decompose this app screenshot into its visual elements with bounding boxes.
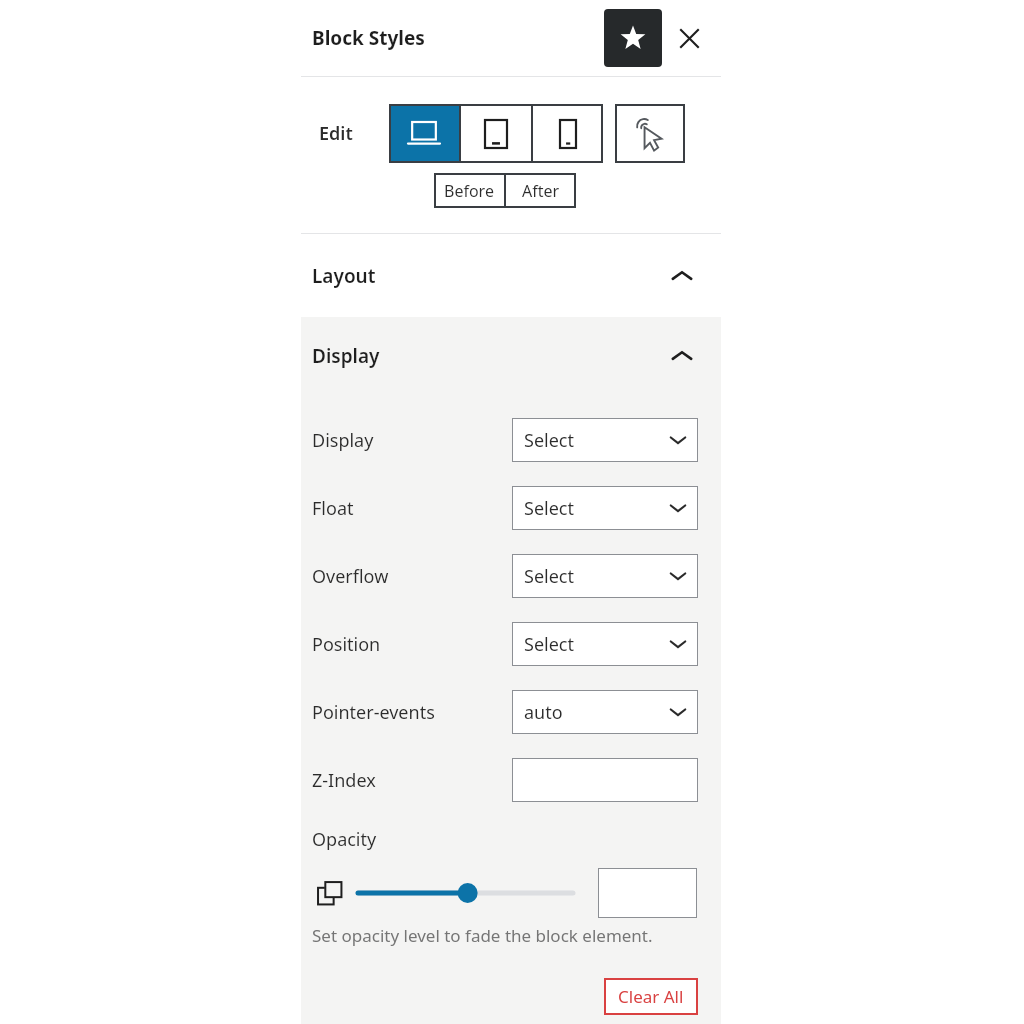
button[interactable]: Select	[512, 554, 698, 598]
staticText: Display	[312, 343, 380, 369]
staticText: Select	[524, 564, 670, 589]
button[interactable]: Select	[512, 418, 698, 462]
staticText: Select	[524, 632, 670, 657]
button[interactable]: Favorite	[604, 9, 662, 67]
button[interactable]: Close	[671, 20, 707, 56]
button[interactable]: Select	[512, 622, 698, 666]
staticText: Opacity	[312, 827, 377, 852]
button[interactable]: Display	[301, 317, 721, 395]
staticText: Block Styles	[312, 25, 425, 51]
staticText: Overflow	[312, 564, 389, 589]
staticText: Pointer-events	[312, 700, 435, 725]
button[interactable]: Copy opacity	[315, 878, 345, 908]
button[interactable]: After	[506, 173, 576, 208]
button[interactable]: Opacity slider	[358, 881, 573, 905]
button[interactable]: Tablet	[461, 104, 531, 163]
staticText: Set opacity level to fade the block elem…	[312, 924, 653, 947]
button[interactable]: Opacity value	[598, 868, 697, 918]
button[interactable]: Select	[512, 486, 698, 530]
staticText: Position	[312, 632, 381, 657]
button[interactable]: auto	[512, 690, 698, 734]
button[interactable]: Clear All	[604, 978, 698, 1015]
button[interactable]: Z-Index value	[512, 758, 698, 802]
staticText: Layout	[312, 263, 376, 289]
staticText: After	[522, 180, 560, 202]
staticText: Float	[312, 496, 354, 521]
staticText: Select	[524, 496, 670, 521]
staticText: Edit	[319, 121, 353, 146]
staticText: auto	[524, 700, 670, 725]
staticText: Display	[312, 428, 374, 453]
button[interactable]: Desktop	[389, 104, 459, 163]
button[interactable]: Before	[434, 173, 504, 208]
staticText: Clear All	[618, 985, 684, 1008]
staticText: Before	[444, 180, 494, 202]
button[interactable]: Layout	[301, 234, 721, 317]
staticText: Z-Index	[312, 768, 376, 793]
staticText: Select	[524, 428, 670, 453]
button[interactable]: Interactions	[615, 104, 685, 163]
button[interactable]: Mobile	[533, 104, 603, 163]
